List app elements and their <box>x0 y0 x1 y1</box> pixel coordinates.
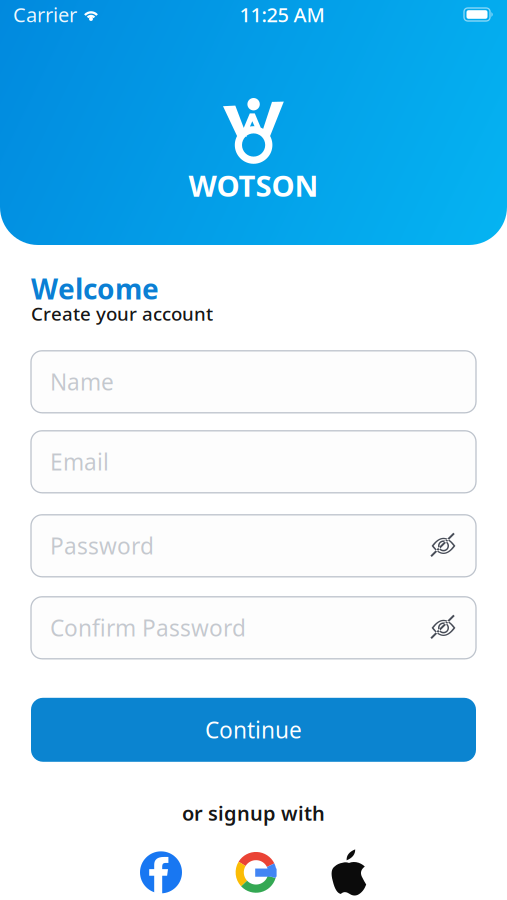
staticText: Create your account <box>31 301 213 326</box>
button[interactable]: Sign up with Facebook <box>140 851 182 893</box>
staticText: or signup with <box>182 800 325 826</box>
button[interactable]: Continue <box>31 698 476 762</box>
staticText: Carrier <box>13 1 77 28</box>
staticText: WOTSON <box>188 166 318 205</box>
staticText: Continue <box>205 715 302 745</box>
staticText: Name <box>50 367 114 397</box>
button[interactable]: Sign up with Apple <box>331 849 367 895</box>
button[interactable]: Sign up with Google <box>235 851 277 893</box>
button[interactable]: Password <box>31 515 476 577</box>
staticText: Welcome <box>31 270 159 307</box>
staticText: Password <box>50 531 154 561</box>
staticText: Confirm Password <box>50 613 246 643</box>
staticText: 11:25 AM <box>239 1 324 28</box>
staticText: Email <box>50 447 109 477</box>
button[interactable]: Name <box>31 351 476 413</box>
button[interactable]: Confirm Password <box>31 597 476 659</box>
button[interactable]: Email <box>31 431 476 493</box>
